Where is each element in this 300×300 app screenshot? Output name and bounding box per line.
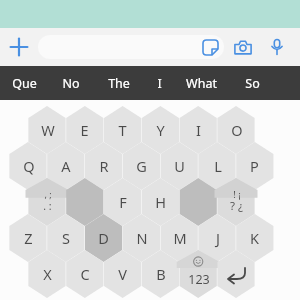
button[interactable]: G <box>120 142 163 190</box>
button[interactable]: H <box>139 178 182 226</box>
button[interactable]: B <box>139 250 182 298</box>
button[interactable]: Voice input <box>265 35 289 59</box>
button[interactable]: U <box>158 142 201 190</box>
staticText: H <box>155 192 166 212</box>
staticText: 123 <box>188 271 210 288</box>
button[interactable]: S <box>44 214 87 262</box>
staticText: V <box>118 264 127 284</box>
staticText: ? ¿ <box>230 198 243 214</box>
staticText: Que <box>12 75 37 92</box>
staticText: G <box>136 156 147 176</box>
staticText: P <box>250 156 259 176</box>
staticText: X <box>43 264 52 284</box>
button[interactable]: What <box>186 66 217 100</box>
button[interactable]: Stickers <box>200 37 220 57</box>
staticText: Y <box>156 120 165 140</box>
staticText: No <box>62 75 80 92</box>
button[interactable]: T <box>101 106 144 154</box>
staticText: , ; <box>44 188 52 200</box>
button[interactable]: Key <box>177 178 220 226</box>
button[interactable]: X <box>26 250 69 298</box>
button[interactable]: Y <box>139 106 182 154</box>
button[interactable]: Z <box>7 214 50 262</box>
staticText: N <box>136 228 148 248</box>
button[interactable]: E <box>63 106 106 154</box>
button[interactable]: I <box>157 66 162 100</box>
staticText: U <box>174 156 185 176</box>
button[interactable]: Que <box>12 66 37 100</box>
button[interactable]: A <box>44 142 87 190</box>
button[interactable]: Camera <box>231 35 255 59</box>
staticText: Q <box>23 156 35 176</box>
button[interactable]: Enter <box>215 250 258 298</box>
button[interactable]: R <box>82 142 125 190</box>
staticText: O <box>231 120 243 140</box>
button[interactable]: No <box>62 66 80 100</box>
staticText: The <box>108 75 130 92</box>
staticText: A <box>61 156 71 176</box>
staticText: So <box>245 75 260 92</box>
button[interactable]: D <box>82 214 125 262</box>
staticText: W <box>41 120 55 140</box>
button[interactable]: Exclamation and question mark <box>215 178 258 226</box>
button[interactable]: C <box>63 250 106 298</box>
button[interactable]: L <box>196 142 239 190</box>
staticText: S <box>62 228 70 248</box>
button[interactable]: Stickers <box>38 35 224 59</box>
button[interactable]: M <box>158 214 201 262</box>
button[interactable]: I <box>177 106 220 154</box>
staticText: I <box>196 120 201 140</box>
button[interactable]: N <box>120 214 163 262</box>
staticText: M <box>173 228 187 248</box>
staticText: E <box>80 120 89 140</box>
button[interactable]: W <box>26 106 69 154</box>
staticText: . : <box>43 199 52 213</box>
staticText: F <box>119 192 127 212</box>
button[interactable]: J <box>196 214 239 262</box>
button[interactable]: Comma and period <box>26 178 69 226</box>
button[interactable]: Symbols and emoji <box>177 250 220 298</box>
button[interactable]: P <box>233 142 276 190</box>
staticText: Z <box>24 228 33 248</box>
staticText: I <box>157 75 162 92</box>
button[interactable]: Add attachment <box>4 32 34 62</box>
staticText: K <box>250 228 259 248</box>
staticText: What <box>186 75 217 92</box>
button[interactable]: F <box>101 178 144 226</box>
staticText: C <box>80 264 90 284</box>
staticText: ! ¡ <box>233 188 241 201</box>
button[interactable]: Key <box>63 178 106 226</box>
staticText: B <box>156 264 166 284</box>
staticText: L <box>214 156 222 176</box>
button[interactable]: So <box>245 66 260 100</box>
button[interactable]: V <box>101 250 144 298</box>
staticText: T <box>118 120 127 140</box>
staticText: D <box>98 228 109 248</box>
button[interactable]: O <box>215 106 258 154</box>
button[interactable]: Q <box>7 142 50 190</box>
button[interactable]: The <box>108 66 130 100</box>
staticText: J <box>216 228 220 248</box>
staticText: R <box>99 156 109 176</box>
button[interactable]: K <box>233 214 276 262</box>
